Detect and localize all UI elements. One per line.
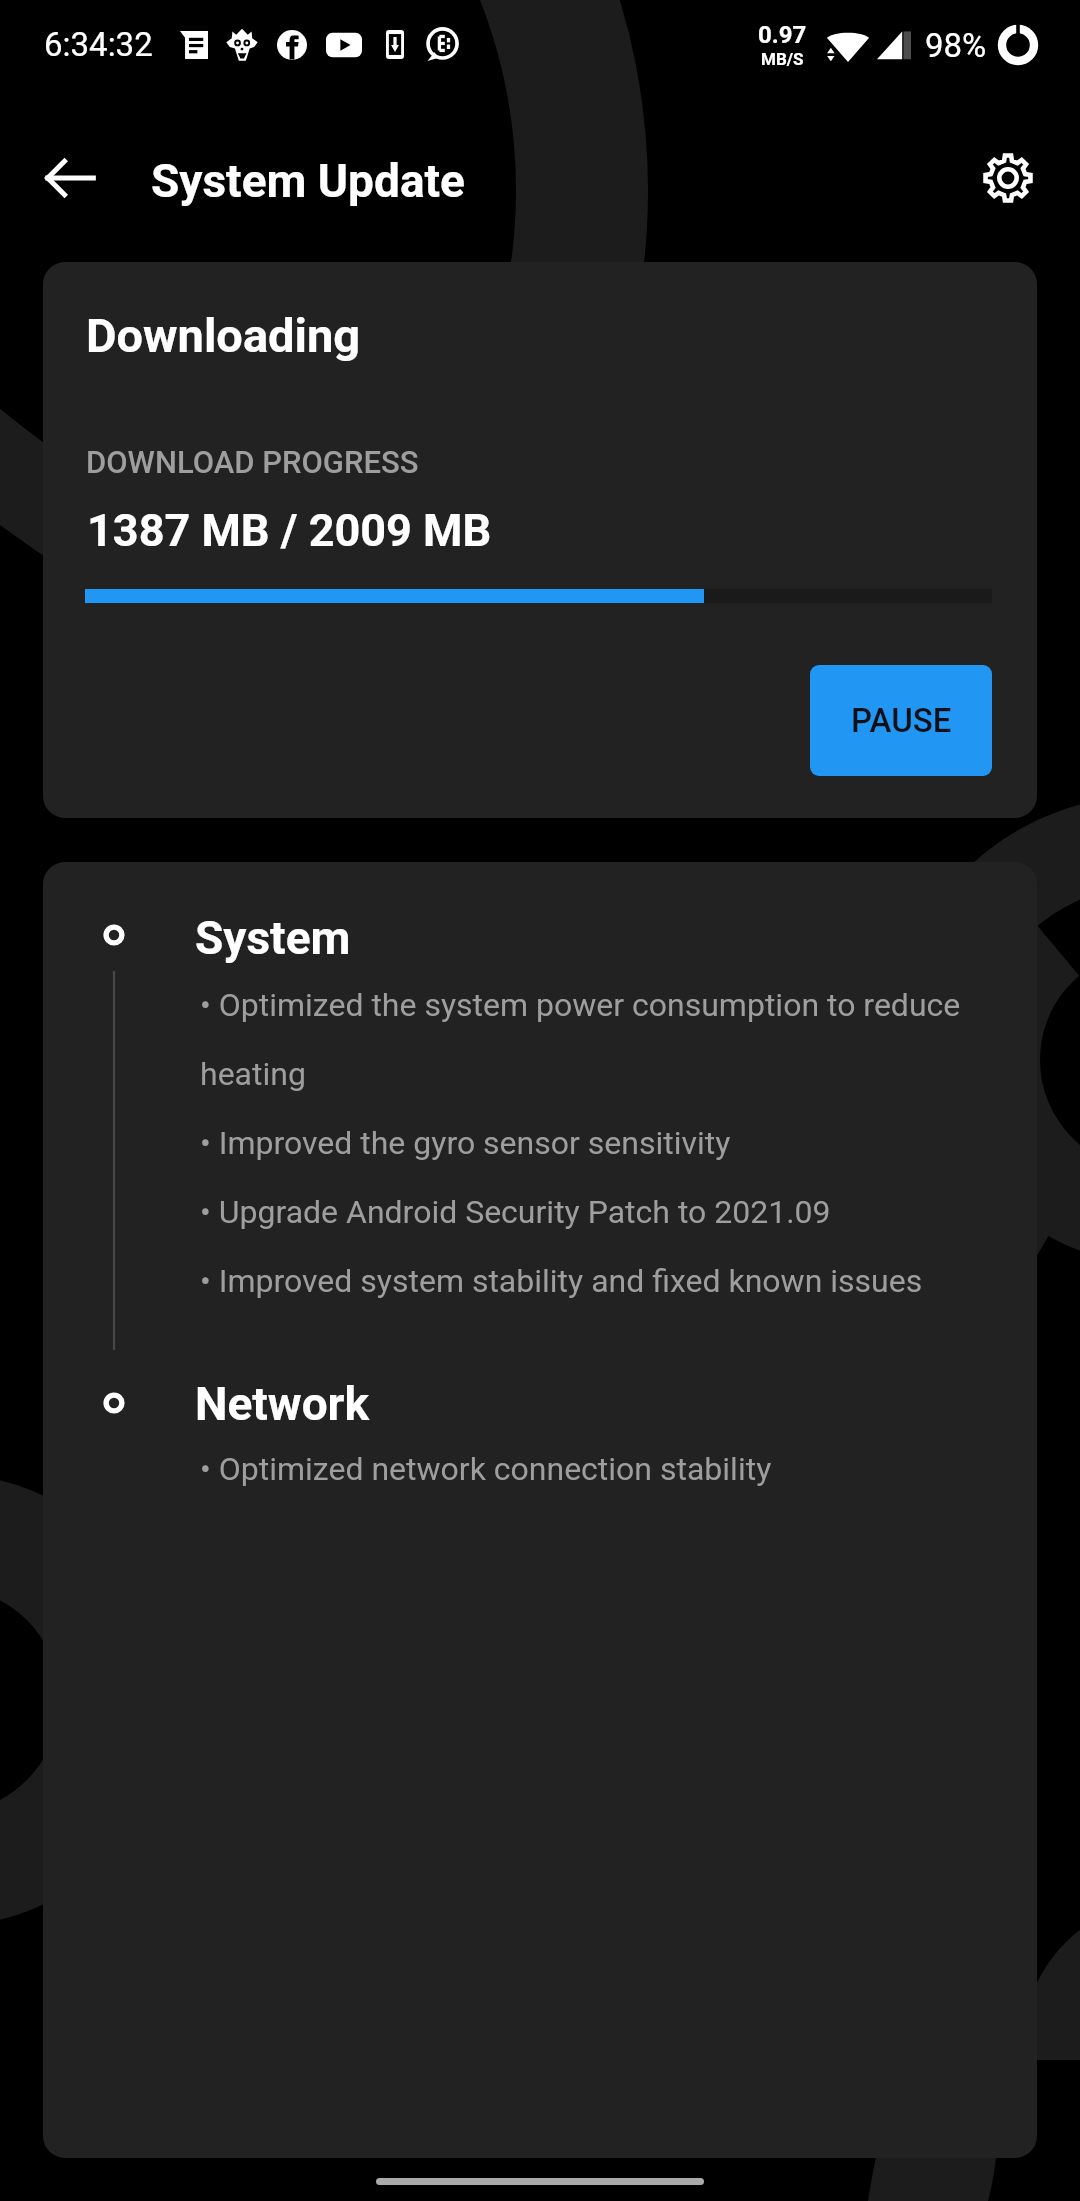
staticText: 6:34:32: [44, 25, 153, 64]
staticText: • Optimized network connection stability: [200, 1450, 772, 1488]
button[interactable]: Settings: [980, 150, 1036, 206]
staticText: 1387 MB / 2009 MB: [87, 504, 492, 557]
staticText: DOWNLOAD PROGRESS: [86, 444, 419, 480]
staticText: 0.97: [758, 21, 807, 49]
staticText: Downloading: [86, 308, 361, 363]
staticText: • Optimized the system power consumption…: [200, 986, 1010, 1299]
staticText: System Update: [151, 154, 465, 208]
staticText: 98%: [925, 26, 987, 65]
staticText: PAUSE: [851, 701, 952, 740]
staticText: Network: [195, 1377, 370, 1431]
staticText: MB/S: [761, 49, 804, 69]
button[interactable]: Back: [28, 140, 104, 216]
button[interactable]: PAUSE: [810, 665, 992, 776]
staticText: System: [195, 911, 351, 965]
